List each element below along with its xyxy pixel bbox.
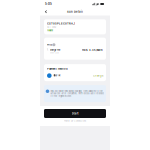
staticText: Start (71, 112, 78, 115)
staticText: Power by Connections (64, 120, 86, 122)
staticText: 5:05 (45, 2, 52, 6)
staticText: Available (47, 29, 53, 32)
staticText: Alipay HK (53, 74, 60, 77)
staticText: Sun Detail (67, 10, 83, 13)
staticText: HK$ 200 will be held during charging, th… (50, 90, 103, 97)
staticText: Price (47, 43, 52, 46)
button[interactable]: Change (93, 74, 103, 77)
staticText: 00:00 - 23:59 (50, 52, 59, 54)
staticText: Energy Fee (50, 48, 60, 51)
staticText: Payment method (47, 67, 68, 70)
staticText: HK$ 3.35/kWh (82, 48, 103, 52)
staticText: CST05PLEC0TRA_1 (47, 22, 75, 25)
button[interactable]: Start (44, 109, 106, 118)
staticText: 1. (47, 48, 49, 51)
staticText: Change (93, 74, 103, 77)
button[interactable]: Back (43, 9, 49, 15)
staticText: AC / CCS2 (47, 26, 56, 28)
